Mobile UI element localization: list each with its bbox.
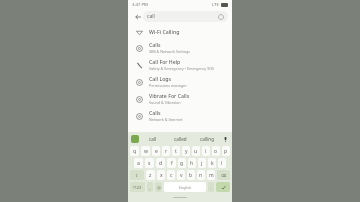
staticText: , <box>149 185 151 190</box>
staticText: h <box>190 160 194 167</box>
button[interactable]: x <box>157 170 165 180</box>
button[interactable]: m <box>207 170 215 180</box>
button[interactable]: v <box>177 170 185 180</box>
button[interactable]: Emoji <box>155 182 162 192</box>
button[interactable]: o <box>212 146 220 156</box>
button[interactable]: call <box>139 132 167 145</box>
button[interactable]: Vibrate For Calls <box>128 90 232 107</box>
staticText: x <box>160 172 163 179</box>
staticText: e <box>155 148 158 155</box>
button[interactable]: s <box>145 158 154 168</box>
button[interactable]: g <box>178 158 186 168</box>
staticText: r <box>165 148 168 155</box>
staticText: Calls <box>149 41 161 48</box>
staticText: v <box>180 172 183 179</box>
button[interactable]: Back <box>132 11 143 22</box>
button[interactable]: Clear <box>218 14 224 20</box>
button[interactable]: e <box>152 146 160 156</box>
staticText: w <box>144 148 148 155</box>
staticText: c <box>170 172 173 179</box>
staticText: p <box>224 148 228 155</box>
staticText: calling <box>200 136 215 142</box>
button[interactable]: Calls <box>128 39 232 56</box>
button[interactable]: d <box>156 158 165 168</box>
button[interactable]: q <box>130 146 139 156</box>
button[interactable]: Symbols <box>130 182 145 192</box>
staticText: Call For Help <box>149 58 181 65</box>
button[interactable]: u <box>192 146 200 156</box>
button[interactable]: call <box>143 11 228 22</box>
button[interactable]: y <box>182 146 190 156</box>
button[interactable]: Calls <box>128 107 232 124</box>
staticText: LTE <box>212 2 219 8</box>
staticText: Safety & Emergency • Emergency SOS <box>149 66 215 71</box>
button[interactable]: r <box>162 146 170 156</box>
staticText: ⌫ <box>221 173 227 177</box>
button[interactable]: Shift <box>130 170 144 180</box>
button[interactable]: Call Logs <box>128 73 232 90</box>
button[interactable]: called <box>167 132 194 145</box>
staticText: i <box>205 148 207 155</box>
staticText: y <box>185 148 188 155</box>
staticText: Call Logs <box>149 75 172 82</box>
staticText: s <box>148 160 151 167</box>
staticText: ⇧ <box>135 173 139 177</box>
button[interactable]: b <box>187 170 195 180</box>
staticText: called <box>174 136 187 142</box>
staticText: Wi-Fi Calling <box>149 28 180 35</box>
staticText: Calls <box>149 109 161 116</box>
staticText: call <box>147 13 155 20</box>
staticText: ☺ <box>157 185 161 189</box>
button[interactable]: Wi-Fi Calling <box>128 24 232 39</box>
staticText: l <box>221 160 223 167</box>
staticText: j <box>201 160 203 167</box>
button[interactable]: f <box>167 158 176 168</box>
button[interactable]: n <box>197 170 205 180</box>
button[interactable]: English <box>164 182 206 192</box>
button[interactable]: c <box>167 170 175 180</box>
staticText: u <box>194 148 198 155</box>
staticText: t <box>175 148 177 155</box>
staticText: k <box>211 160 214 167</box>
button[interactable]: j <box>198 158 206 168</box>
button[interactable]: i <box>202 146 210 156</box>
staticText: a <box>137 160 140 167</box>
button[interactable]: Comma <box>147 182 153 192</box>
staticText: m <box>209 172 214 179</box>
button[interactable]: l <box>218 158 226 168</box>
button[interactable]: Backspace <box>217 170 230 180</box>
button[interactable]: w <box>141 146 150 156</box>
staticText: g <box>180 160 184 167</box>
staticText: call <box>149 136 157 142</box>
staticText: ?123 <box>133 185 142 190</box>
button[interactable]: h <box>188 158 196 168</box>
staticText: Network & Internet <box>149 117 183 122</box>
staticText: b <box>189 172 193 179</box>
staticText: q <box>133 148 137 155</box>
button[interactable]: a <box>134 158 143 168</box>
staticText: Vibrate For Calls <box>149 92 190 99</box>
button[interactable]: Voice input <box>221 135 229 143</box>
staticText: o <box>214 148 218 155</box>
staticText: z <box>149 172 152 179</box>
staticText: SIM & Network Settings <box>149 49 191 54</box>
button[interactable]: p <box>222 146 230 156</box>
button[interactable]: Period <box>208 182 214 192</box>
staticText: . <box>210 185 212 190</box>
button[interactable]: calling <box>194 132 221 145</box>
staticText: n <box>199 172 203 179</box>
staticText: 3:47 PM <box>132 2 148 8</box>
button[interactable]: Call For Help <box>128 56 232 73</box>
button[interactable]: Keyboard settings <box>131 135 139 143</box>
button[interactable]: k <box>208 158 216 168</box>
staticText: Permissions manager <box>149 83 187 88</box>
staticText: d <box>159 160 163 167</box>
staticText: Sound & Vibration <box>149 100 181 105</box>
button[interactable]: t <box>172 146 180 156</box>
staticText: f <box>171 160 173 167</box>
button[interactable]: Search <box>216 182 230 192</box>
staticText: English <box>179 185 192 190</box>
button[interactable]: z <box>146 170 155 180</box>
